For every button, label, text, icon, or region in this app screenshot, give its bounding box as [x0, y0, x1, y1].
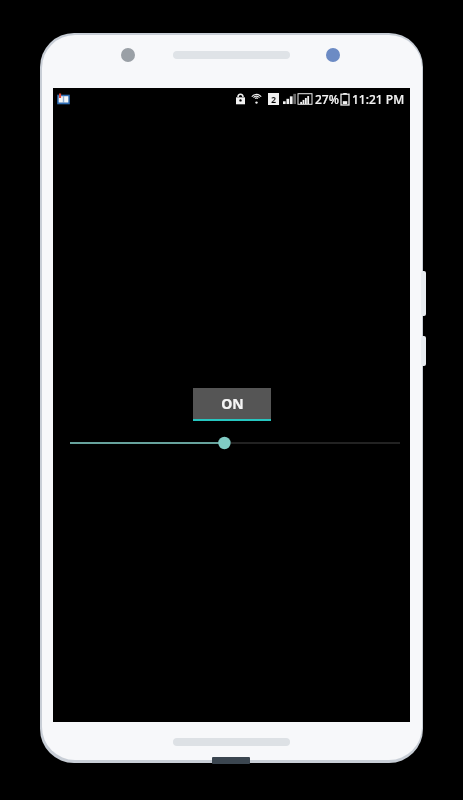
- button[interactable]: ON: [193, 388, 271, 419]
- staticText: 27%: [315, 91, 339, 107]
- staticText: ON: [221, 394, 244, 413]
- staticText: 11:21 PM: [352, 91, 405, 107]
- staticText: 2: [271, 93, 277, 105]
- button[interactable]: Seek bar: [53, 430, 410, 456]
